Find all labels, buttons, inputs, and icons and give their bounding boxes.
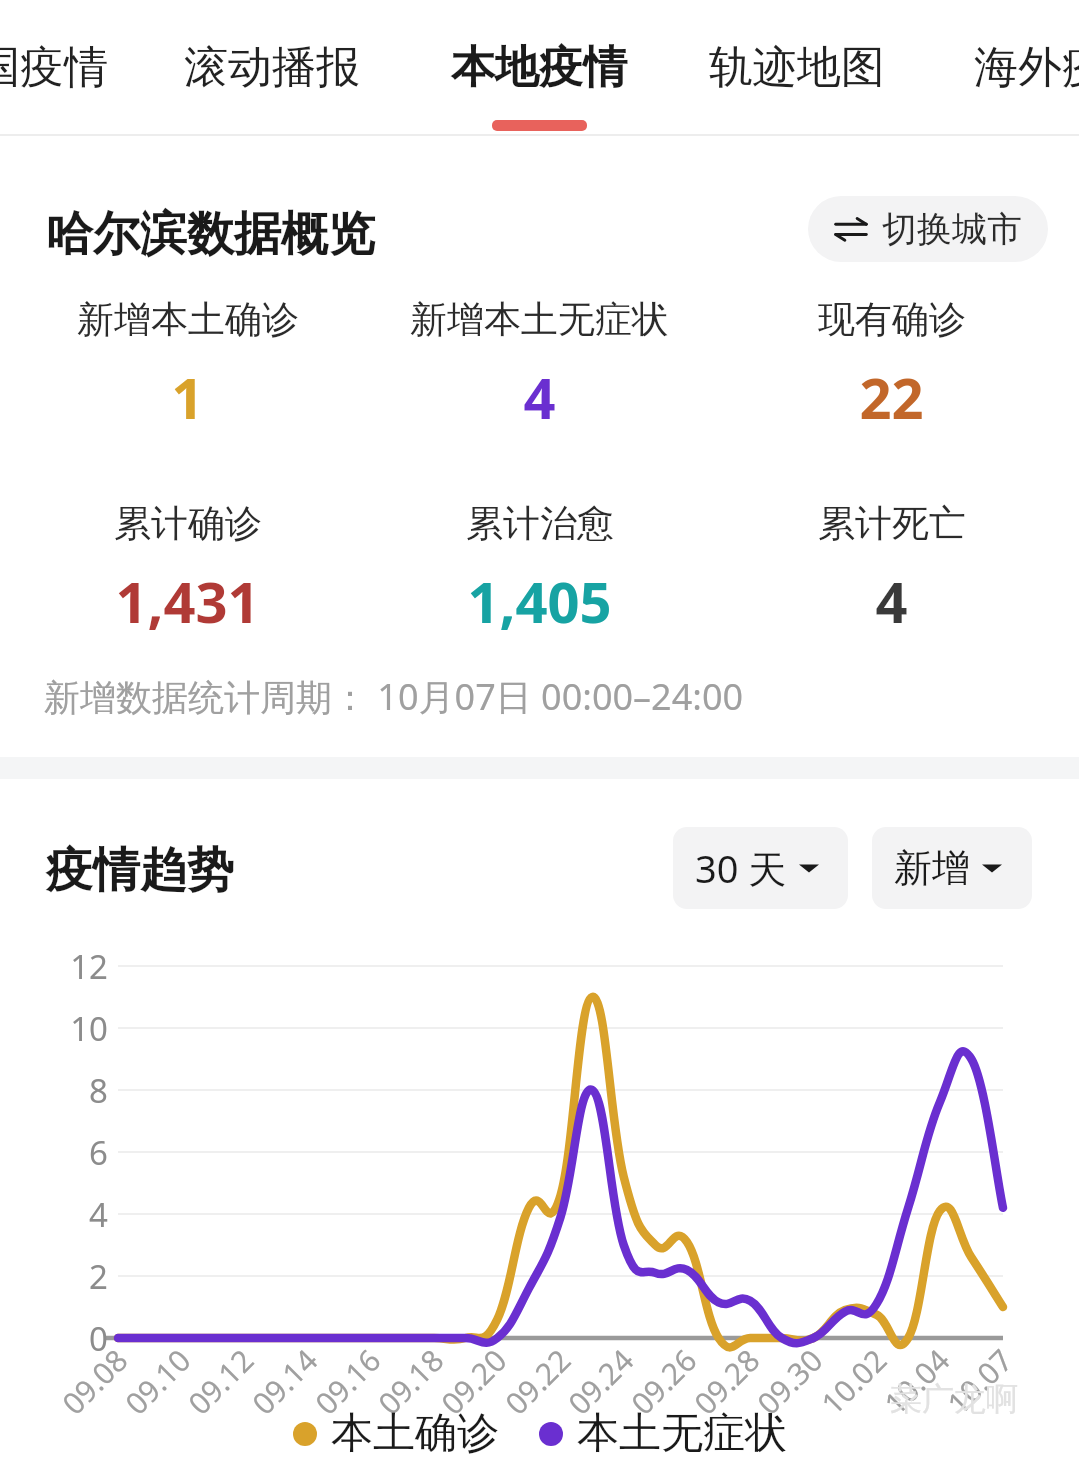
staticText: 本土无症状 xyxy=(577,1407,787,1460)
staticText: 09.10 xyxy=(116,1340,199,1423)
staticText: 现有确诊 xyxy=(818,296,966,343)
button[interactable]: 本地疫情 xyxy=(447,36,631,99)
button[interactable]: 现有确诊 xyxy=(704,296,1079,435)
staticText: 4 xyxy=(62,1192,108,1237)
staticText: 本地疫情 xyxy=(451,40,627,95)
staticText: 新增 xyxy=(894,844,970,892)
staticText: 累计治愈 xyxy=(466,500,614,547)
staticText: 10.02 xyxy=(812,1340,895,1423)
staticText: 哈尔滨数据概览 xyxy=(46,205,375,264)
staticText: 0 xyxy=(62,1316,108,1361)
button[interactable]: 本土确诊 xyxy=(293,1407,499,1460)
staticText: 09.22 xyxy=(496,1340,579,1423)
staticText: 切换城市 xyxy=(882,207,1022,251)
button[interactable]: 滚动播报 xyxy=(180,36,364,99)
staticText: 12 xyxy=(62,944,108,989)
staticText: 菜广龙啊 xyxy=(890,1379,1018,1419)
staticText: 8 xyxy=(62,1068,108,1113)
staticText: 4 xyxy=(875,563,908,639)
staticText: 疫情趋势 xyxy=(46,841,234,900)
staticText: 国疫情 xyxy=(0,40,108,95)
staticText: 2 xyxy=(62,1254,108,1299)
staticText: 新增数据统计周期： 10月07日 00:00–24:00 xyxy=(44,672,744,721)
staticText: 累计确诊 xyxy=(114,500,262,547)
staticText: 1 xyxy=(171,359,204,435)
staticText: 新增本土确诊 xyxy=(77,296,299,343)
button[interactable]: 累计死亡 xyxy=(704,500,1079,639)
staticText: 30 天 xyxy=(695,842,787,894)
button[interactable]: 轨迹地图 xyxy=(705,36,889,99)
staticText: 4 xyxy=(523,359,556,435)
button[interactable]: 国疫情 xyxy=(0,36,112,99)
staticText: 09.14 xyxy=(243,1340,326,1423)
staticText: 1,405 xyxy=(467,563,612,639)
button[interactable]: 新增本土无症状 xyxy=(352,296,727,435)
staticText: 新增本土无症状 xyxy=(410,296,669,343)
staticText: 轨迹地图 xyxy=(709,40,885,95)
staticText: 09.18 xyxy=(369,1340,452,1423)
staticText: 滚动播报 xyxy=(184,40,360,95)
staticText: 22 xyxy=(859,359,924,435)
button[interactable]: 新增 xyxy=(872,827,1032,909)
staticText: 6 xyxy=(62,1130,108,1175)
other: Switch city xyxy=(834,212,868,246)
staticText: 1,431 xyxy=(115,563,260,639)
staticText: 09.16 xyxy=(306,1340,389,1423)
staticText: 09.26 xyxy=(622,1340,705,1423)
staticText: 09.20 xyxy=(432,1340,515,1423)
staticText: 09.28 xyxy=(685,1340,768,1423)
staticText: 09.12 xyxy=(179,1340,262,1423)
staticText: 累计死亡 xyxy=(818,500,966,547)
button[interactable]: 海外疫 xyxy=(970,36,1079,99)
staticText: 海外疫 xyxy=(974,40,1079,95)
staticText: 09.08 xyxy=(53,1340,136,1423)
staticText: 10 xyxy=(62,1006,108,1051)
staticText: 09.24 xyxy=(559,1340,642,1423)
staticText: 09.30 xyxy=(748,1340,831,1423)
button[interactable]: 累计确诊 xyxy=(0,500,375,639)
staticText: 本土确诊 xyxy=(331,1407,499,1460)
button[interactable]: 累计治愈 xyxy=(352,500,727,639)
staticText: 10.07 xyxy=(938,1340,1021,1423)
staticText: 10.04 xyxy=(875,1340,958,1423)
button[interactable]: 新增本土确诊 xyxy=(0,296,375,435)
button[interactable]: 本土无症状 xyxy=(539,1407,787,1460)
button[interactable]: 30 天 xyxy=(673,827,848,909)
button[interactable]: Switch city xyxy=(808,196,1048,262)
